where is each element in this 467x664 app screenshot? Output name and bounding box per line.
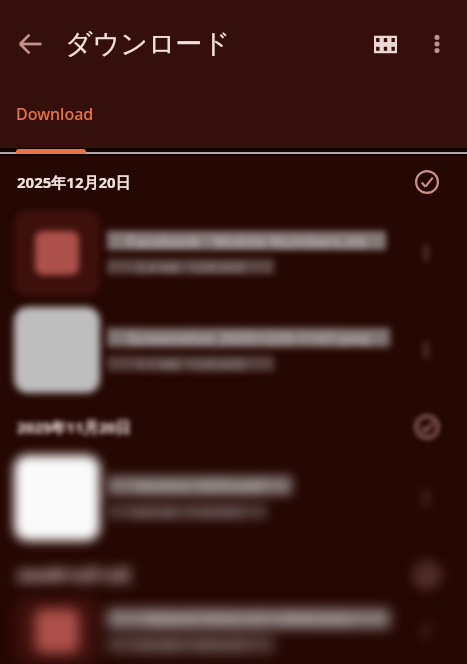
button[interactable]: Item menu [409, 236, 443, 270]
button[interactable]: Item menu [409, 333, 443, 367]
button[interactable]: More options [409, 16, 465, 72]
button[interactable]: Select all [410, 410, 444, 444]
button[interactable]: Report_final_v2 – 2025.xlsx [0, 597, 467, 664]
staticText: ダウンロード [65, 27, 231, 61]
staticText: Download [16, 103, 94, 125]
staticText: 3.8 MB · 10月12日 [137, 637, 245, 652]
button[interactable]: Select all [410, 165, 444, 199]
staticText: Report_final_v2 – 2025.xlsx [147, 609, 351, 628]
button[interactable]: Item menu [409, 614, 443, 648]
button[interactable]: Download [0, 86, 467, 148]
staticText: Screenshot_20251220-1147.png [128, 328, 370, 347]
button[interactable]: Item menu [409, 481, 443, 515]
button[interactable]: Screenshot_20251220-1147.png [0, 301, 467, 398]
staticText: 2025年11月20日 [17, 417, 131, 437]
button[interactable]: Grid view [357, 16, 413, 72]
staticText: Facebook - Mobile Numbers.xls [127, 231, 367, 250]
button[interactable]: invoice_2025.pdf [0, 449, 467, 546]
staticText: 1.1 MB · 12月20日 [137, 356, 245, 371]
staticText: 2.4 MB · 12月20日 [137, 259, 245, 274]
staticText: 2025年12月20日 [17, 172, 131, 192]
button[interactable]: Select all [410, 558, 444, 592]
staticText: invoice_2025.pdf [136, 476, 264, 495]
button[interactable]: Facebook - Mobile Numbers.xls [0, 204, 467, 301]
staticText: 2025年10月12日 [17, 565, 131, 585]
staticText: 820 KB · 11月20日 [133, 504, 242, 519]
button[interactable]: Back [0, 14, 60, 74]
